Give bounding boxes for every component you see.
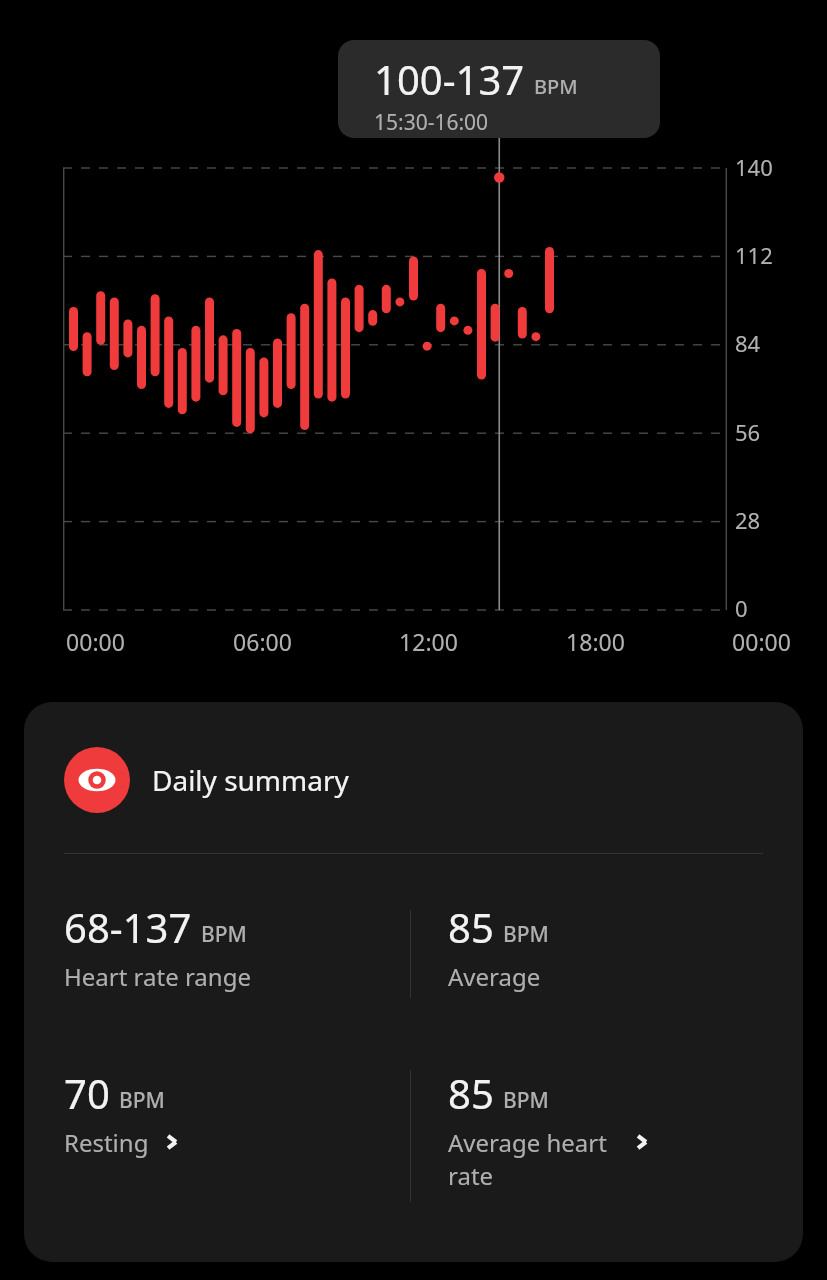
staticText: 100-137: [374, 52, 525, 106]
staticText: 68-137: [64, 900, 192, 954]
staticText: 84: [735, 328, 761, 358]
staticText: 18:00: [566, 626, 625, 657]
staticText: BPM: [503, 920, 549, 949]
staticText: 00:00: [66, 626, 125, 657]
button[interactable]: Daily summary: [64, 747, 349, 813]
button[interactable]: 70: [64, 1066, 394, 1159]
staticText: 15:30-16:00: [374, 108, 489, 137]
staticText: 70: [64, 1066, 110, 1120]
button[interactable]: 100-137: [338, 40, 660, 138]
button[interactable]: 68-137: [64, 900, 394, 993]
staticText: Daily summary: [152, 761, 349, 799]
button[interactable]: 85: [448, 1066, 778, 1192]
staticText: 56: [735, 417, 761, 447]
staticText: BPM: [119, 1086, 165, 1115]
other: Daily summary: [64, 747, 130, 813]
button[interactable]: 85: [448, 900, 778, 993]
staticText: 140: [735, 152, 773, 182]
staticText: 00:00: [732, 626, 791, 657]
staticText: 12:00: [399, 626, 458, 657]
staticText: 0: [735, 593, 748, 623]
other: Open details: [633, 1133, 651, 1151]
other: Open details: [163, 1133, 181, 1151]
staticText: BPM: [534, 73, 578, 100]
staticText: 85: [448, 1066, 494, 1120]
staticText: 06:00: [233, 626, 292, 657]
staticText: 28: [735, 505, 761, 535]
staticText: Average: [448, 960, 541, 993]
staticText: 112: [735, 240, 773, 270]
staticText: Average heart rate: [448, 1126, 607, 1192]
staticText: Heart rate range: [64, 960, 251, 993]
staticText: Resting: [64, 1126, 149, 1159]
staticText: BPM: [503, 1086, 549, 1115]
staticText: BPM: [201, 920, 247, 949]
staticText: 85: [448, 900, 494, 954]
